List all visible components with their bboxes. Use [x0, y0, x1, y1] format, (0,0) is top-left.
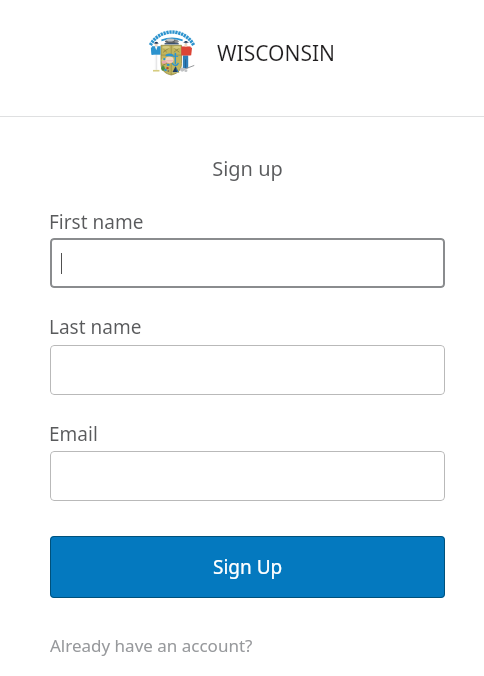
staticText: Email [49, 421, 98, 447]
button[interactable] [50, 345, 445, 395]
button[interactable]: State of Wisconsin seal [145, 27, 335, 81]
staticText: Sign up [50, 155, 445, 182]
button[interactable]: Already have an account? [50, 634, 253, 657]
staticText: Sign Up [213, 554, 283, 580]
staticText: Last name [49, 314, 142, 340]
other: State of Wisconsin seal [145, 27, 199, 81]
staticText: WISCONSIN [217, 39, 335, 68]
staticText: First name [49, 209, 144, 235]
button[interactable] [50, 238, 445, 288]
button[interactable] [50, 451, 445, 501]
button[interactable]: Sign Up [50, 536, 445, 598]
